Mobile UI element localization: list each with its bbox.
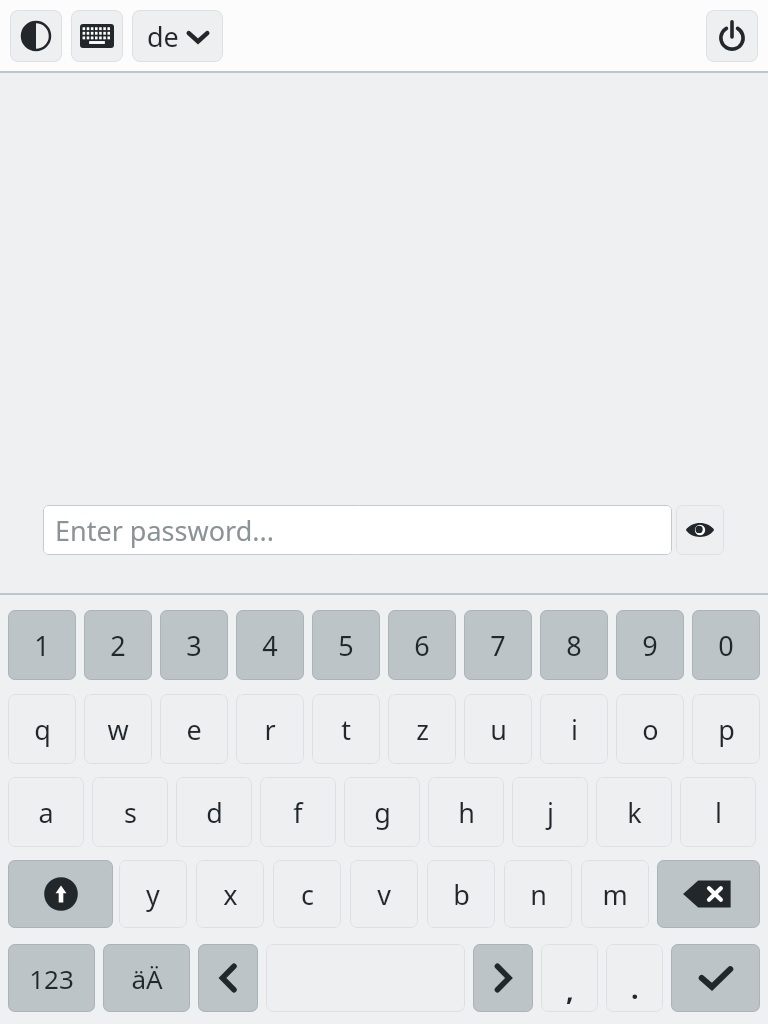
button[interactable]: Enter password... — [43, 505, 672, 555]
button[interactable]: z — [388, 694, 456, 764]
staticText: 7 — [490, 627, 506, 664]
button[interactable]: Cursor right — [473, 944, 533, 1012]
staticText: m — [602, 876, 628, 913]
button[interactable]: Backspace — [657, 860, 760, 928]
button[interactable]: Contrast — [10, 10, 62, 62]
staticText: o — [642, 711, 659, 748]
staticText: y — [146, 876, 160, 913]
button[interactable]: p — [692, 694, 760, 764]
button[interactable]: t — [312, 694, 380, 764]
staticText: l — [715, 794, 722, 831]
button[interactable]: 1 — [8, 610, 76, 680]
button[interactable]: i — [540, 694, 608, 764]
staticText: 4 — [262, 627, 278, 664]
staticText: r — [264, 711, 276, 748]
staticText: g — [374, 794, 391, 831]
button[interactable]: Enter — [671, 944, 760, 1012]
staticText: 6 — [414, 627, 430, 664]
button[interactable]: äÄ — [103, 944, 190, 1012]
button[interactable]: Space — [266, 944, 465, 1012]
staticText: b — [453, 876, 470, 913]
button[interactable]: n — [504, 860, 572, 928]
button[interactable]: 3 — [160, 610, 228, 680]
staticText: t — [341, 711, 351, 748]
button[interactable]: de — [132, 10, 223, 62]
staticText: a — [38, 794, 54, 831]
button[interactable]: y — [119, 860, 187, 928]
button[interactable]: 9 — [616, 610, 684, 680]
button[interactable]: w — [84, 694, 152, 764]
button[interactable]: a — [8, 777, 84, 847]
button[interactable]: c — [273, 860, 341, 928]
staticText: 2 — [110, 627, 126, 664]
staticText: v — [377, 876, 391, 913]
button[interactable]: Shift — [8, 860, 113, 928]
button[interactable]: u — [464, 694, 532, 764]
button[interactable]: d — [176, 777, 252, 847]
staticText: 5 — [338, 627, 354, 664]
staticText: f — [293, 794, 303, 831]
button[interactable]: s — [92, 777, 168, 847]
staticText: e — [186, 711, 202, 748]
button[interactable]: e — [160, 694, 228, 764]
button[interactable]: Show password — [676, 505, 724, 555]
staticText: w — [107, 711, 129, 748]
staticText: u — [490, 711, 507, 748]
staticText: i — [571, 711, 578, 748]
button[interactable]: Period — [606, 944, 663, 1012]
button[interactable]: 6 — [388, 610, 456, 680]
staticText: c — [301, 876, 314, 913]
button[interactable]: 123 — [8, 944, 95, 1012]
button[interactable]: Cursor left — [198, 944, 258, 1012]
button[interactable]: o — [616, 694, 684, 764]
staticText: q — [34, 711, 51, 748]
staticText: z — [416, 711, 429, 748]
staticText: 3 — [186, 627, 202, 664]
staticText: j — [547, 794, 554, 831]
staticText: k — [627, 794, 642, 831]
staticText: d — [206, 794, 223, 831]
staticText: h — [458, 794, 475, 831]
button[interactable]: g — [344, 777, 420, 847]
staticText: 8 — [566, 627, 582, 664]
button[interactable]: m — [581, 860, 649, 928]
button[interactable]: h — [428, 777, 504, 847]
button[interactable]: x — [196, 860, 264, 928]
button[interactable]: q — [8, 694, 76, 764]
button[interactable]: 4 — [236, 610, 304, 680]
staticText: 9 — [642, 627, 658, 664]
button[interactable]: Power — [706, 10, 758, 62]
button[interactable]: v — [350, 860, 418, 928]
button[interactable]: f — [260, 777, 336, 847]
staticText: s — [124, 794, 137, 831]
staticText: n — [530, 876, 547, 913]
staticText: . — [631, 970, 639, 1007]
staticText: 123 — [29, 961, 74, 996]
button[interactable]: Keyboard layout — [71, 10, 123, 62]
button[interactable]: k — [596, 777, 672, 847]
staticText: Enter password... — [55, 512, 274, 549]
staticText: äÄ — [131, 961, 163, 996]
staticText: , — [566, 972, 574, 1009]
staticText: de — [147, 18, 179, 55]
button[interactable]: 7 — [464, 610, 532, 680]
staticText: 0 — [718, 627, 734, 664]
staticText: 1 — [34, 627, 50, 664]
button[interactable]: b — [427, 860, 495, 928]
button[interactable]: 5 — [312, 610, 380, 680]
staticText: x — [223, 876, 238, 913]
button[interactable]: 2 — [84, 610, 152, 680]
button[interactable]: 8 — [540, 610, 608, 680]
button[interactable]: Comma — [541, 944, 598, 1012]
button[interactable]: r — [236, 694, 304, 764]
staticText: p — [718, 711, 735, 748]
button[interactable]: 0 — [692, 610, 760, 680]
button[interactable]: j — [512, 777, 588, 847]
button[interactable]: l — [680, 777, 756, 847]
